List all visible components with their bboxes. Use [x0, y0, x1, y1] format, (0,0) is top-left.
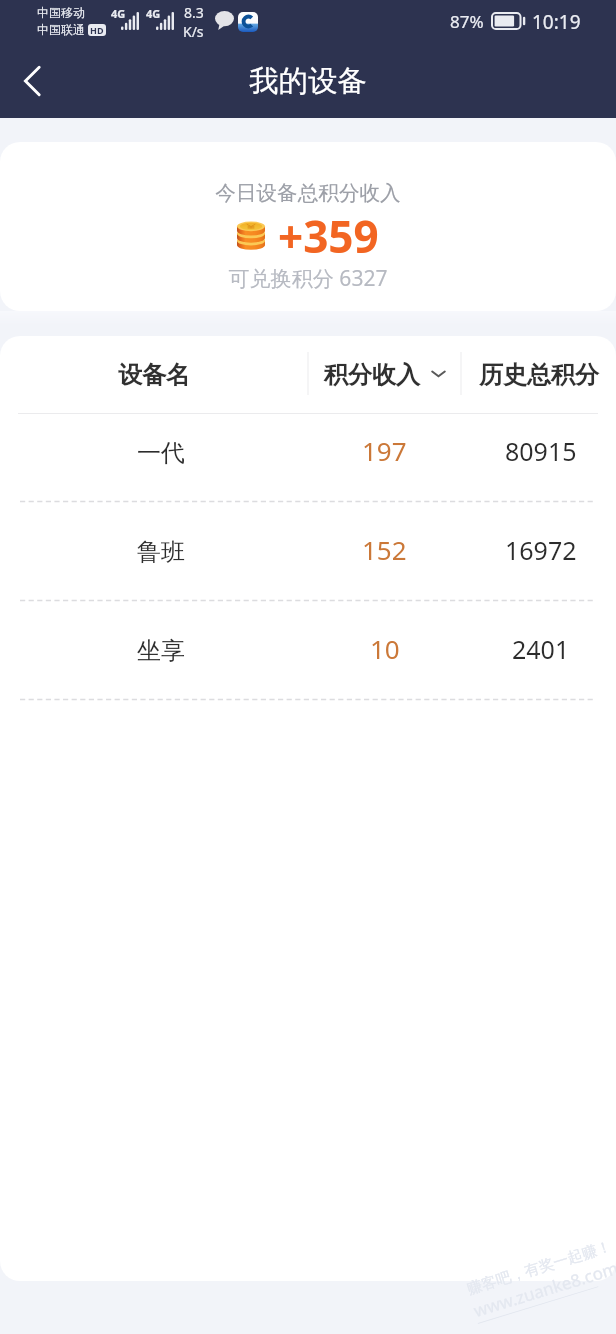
staticText: 我的设备 — [0, 63, 616, 100]
staticText: 152 — [362, 532, 407, 567]
staticText: 2401 — [512, 632, 570, 666]
staticText: 鲁班 — [137, 537, 185, 567]
staticText: 16972 — [505, 533, 577, 567]
staticText: 197 — [362, 433, 407, 468]
staticText: 中国移动 — [37, 5, 85, 20]
staticText: +359 — [278, 206, 379, 266]
staticText: 8.3 — [184, 3, 204, 22]
button[interactable]: 坐享 — [0, 600, 616, 699]
button[interactable]: 一代 — [0, 414, 616, 501]
staticText: K/s — [183, 22, 204, 41]
staticText: 10 — [370, 631, 400, 666]
staticText: 4G — [111, 6, 126, 21]
staticText: 积分收入 — [324, 360, 420, 390]
staticText: 设备名 — [118, 360, 190, 390]
staticText: 一代 — [137, 438, 185, 468]
staticText: HD — [90, 24, 104, 36]
button[interactable]: 积分收入 — [308, 336, 461, 413]
button[interactable]: 今日设备总积分收入 — [0, 142, 616, 311]
button[interactable]: Back — [3, 52, 61, 110]
staticText: 可兑换积分 6327 — [0, 263, 616, 292]
staticText: 87% — [450, 10, 484, 33]
staticText: 80915 — [505, 434, 577, 468]
staticText: 历史总积分 — [479, 360, 599, 390]
staticText: 坐享 — [137, 636, 185, 666]
staticText: 中国联通 — [37, 22, 85, 37]
button[interactable]: 鲁班 — [0, 501, 616, 600]
staticText: www.zuanke8.com — [471, 1256, 616, 1322]
staticText: 4G — [146, 6, 161, 21]
staticText: 10:19 — [532, 9, 581, 35]
staticText: 赚客吧，有奖一起赚！ — [465, 1237, 614, 1299]
staticText: 今日设备总积分收入 — [0, 180, 616, 206]
